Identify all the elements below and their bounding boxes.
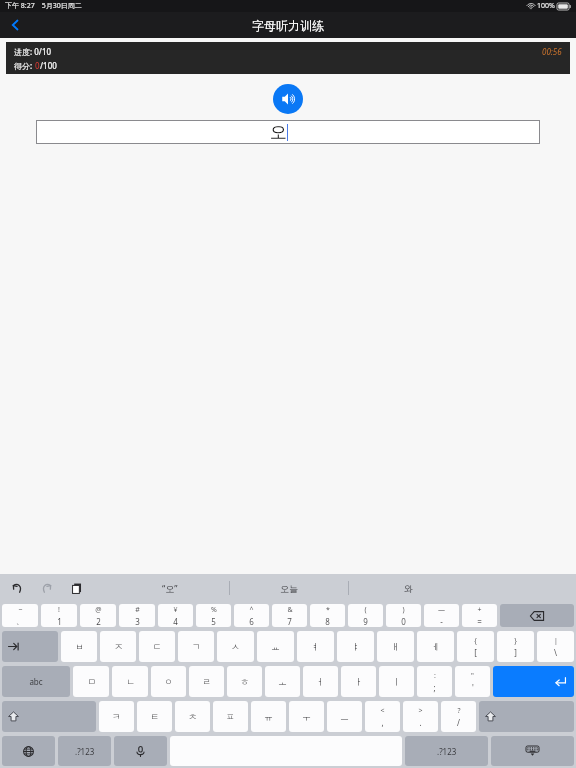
button[interactable]: ~ bbox=[2, 604, 38, 627]
staticText: ( bbox=[364, 605, 367, 615]
button[interactable]: Back bbox=[0, 12, 30, 38]
button[interactable]: ㅎ bbox=[227, 666, 262, 697]
button[interactable]: Paste bbox=[68, 579, 86, 597]
button[interactable]: .?123 bbox=[58, 736, 111, 766]
button[interactable]: | bbox=[537, 631, 574, 662]
staticText: abc bbox=[29, 676, 43, 687]
staticText: 1 bbox=[57, 616, 62, 627]
staticText: - bbox=[440, 616, 443, 627]
button[interactable]: Tab bbox=[2, 631, 58, 662]
staticText: ㅎ bbox=[240, 676, 249, 687]
staticText: ㅛ bbox=[271, 641, 280, 652]
button[interactable]: # bbox=[119, 604, 155, 627]
staticText: ; bbox=[433, 682, 436, 693]
button[interactable]: ㅇ bbox=[151, 666, 186, 697]
button[interactable]: } bbox=[497, 631, 534, 662]
button[interactable]: ㄴ bbox=[112, 666, 148, 697]
staticText: ! bbox=[58, 605, 60, 615]
button[interactable]: ㅣ bbox=[379, 666, 414, 697]
button[interactable]: @ bbox=[80, 604, 116, 627]
staticText: } bbox=[514, 636, 517, 646]
button[interactable]: abc bbox=[2, 666, 70, 697]
staticText: 4 bbox=[173, 616, 178, 627]
staticText: 下午 8:27 5月30日周二 bbox=[5, 1, 82, 11]
button[interactable]: Shift bbox=[2, 701, 96, 732]
button[interactable]: ㅓ bbox=[303, 666, 338, 697]
staticText: ㅕ bbox=[311, 641, 320, 652]
staticText: 오 bbox=[270, 122, 287, 143]
staticText: ㅐ bbox=[391, 641, 400, 652]
button[interactable]: ㅐ bbox=[377, 631, 414, 662]
button[interactable]: “오” bbox=[110, 574, 229, 602]
button[interactable]: Undo bbox=[8, 579, 26, 597]
button[interactable]: .?123 bbox=[405, 736, 488, 766]
button[interactable]: < bbox=[365, 701, 400, 732]
staticText: ' bbox=[472, 682, 474, 693]
button[interactable]: Backspace bbox=[500, 604, 574, 627]
button[interactable]: ㅠ bbox=[251, 701, 286, 732]
button[interactable]: ㅈ bbox=[100, 631, 136, 662]
button[interactable]: { bbox=[457, 631, 494, 662]
button[interactable]: ㄹ bbox=[189, 666, 224, 697]
staticText: 00:56 bbox=[542, 46, 562, 57]
button[interactable]: ㅋ bbox=[99, 701, 134, 732]
staticText: 、 bbox=[16, 616, 24, 626]
button[interactable]: + bbox=[462, 604, 497, 627]
staticText: ㅑ bbox=[351, 641, 360, 652]
button[interactable]: * bbox=[310, 604, 345, 627]
button[interactable]: ㅁ bbox=[73, 666, 109, 697]
button[interactable]: ㅌ bbox=[137, 701, 172, 732]
button[interactable]: ㅛ bbox=[257, 631, 294, 662]
button[interactable]: Play sound bbox=[273, 84, 303, 114]
button[interactable]: > bbox=[403, 701, 438, 732]
button[interactable]: ㅗ bbox=[265, 666, 300, 697]
button[interactable]: 오 bbox=[36, 120, 540, 144]
button[interactable]: ㅔ bbox=[417, 631, 454, 662]
button[interactable]: — bbox=[424, 604, 459, 627]
button[interactable]: % bbox=[196, 604, 231, 627]
button[interactable]: ㅅ bbox=[217, 631, 254, 662]
button[interactable]: : bbox=[417, 666, 452, 697]
button[interactable]: ㅕ bbox=[297, 631, 334, 662]
button[interactable]: Redo bbox=[38, 579, 56, 597]
button[interactable]: Shift bbox=[479, 701, 574, 732]
staticText: ] bbox=[514, 647, 517, 658]
button[interactable]: " bbox=[455, 666, 490, 697]
button[interactable]: ㄱ bbox=[178, 631, 214, 662]
staticText: 进度: 0/10 bbox=[14, 46, 52, 57]
button[interactable]: ㅂ bbox=[61, 631, 97, 662]
staticText: ㄹ bbox=[202, 676, 211, 687]
button[interactable]: ㅑ bbox=[337, 631, 374, 662]
button[interactable]: ¥ bbox=[158, 604, 193, 627]
staticText: ^ bbox=[249, 605, 254, 615]
button[interactable]: ) bbox=[386, 604, 421, 627]
staticText: & bbox=[287, 605, 293, 615]
button[interactable]: Enter bbox=[493, 666, 574, 697]
button[interactable]: ? bbox=[441, 701, 476, 732]
button[interactable]: ! bbox=[41, 604, 77, 627]
staticText: ㅡ bbox=[340, 711, 349, 722]
button[interactable]: & bbox=[272, 604, 307, 627]
staticText: , bbox=[381, 717, 384, 728]
button[interactable]: ㅡ bbox=[327, 701, 362, 732]
staticText: 오늘 bbox=[280, 583, 298, 594]
staticText: ㅅ bbox=[231, 641, 240, 652]
staticText: ㄷ bbox=[153, 641, 162, 652]
button[interactable]: ^ bbox=[234, 604, 269, 627]
staticText: ㅌ bbox=[150, 711, 159, 722]
button[interactable]: ㅍ bbox=[213, 701, 248, 732]
button[interactable]: Switch keyboard bbox=[2, 736, 55, 766]
button[interactable]: ㅏ bbox=[341, 666, 376, 697]
button[interactable]: ( bbox=[348, 604, 383, 627]
button[interactable]: ㅊ bbox=[175, 701, 210, 732]
staticText: ~ bbox=[18, 605, 23, 615]
button[interactable]: ㄷ bbox=[139, 631, 175, 662]
button[interactable]: 오늘 bbox=[230, 574, 348, 602]
staticText: ㅣ bbox=[392, 676, 401, 687]
button[interactable]: 와 bbox=[349, 574, 467, 602]
button[interactable]: ㅜ bbox=[289, 701, 324, 732]
staticText: ㅁ bbox=[87, 676, 96, 687]
button[interactable]: Hide keyboard bbox=[491, 736, 574, 766]
button[interactable]: Voice input bbox=[114, 736, 167, 766]
